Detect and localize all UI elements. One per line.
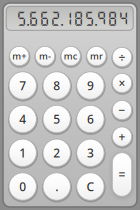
staticText: . [55,178,58,194]
staticText: = [118,166,125,182]
button[interactable]: 5 [41,104,72,134]
staticText: 8 [53,77,60,93]
button[interactable]: mc [59,45,82,67]
button[interactable]: 9 [75,70,106,101]
staticText: × [118,75,125,91]
button[interactable]: 0 [7,171,38,202]
button[interactable]: − [111,99,133,121]
button[interactable]: × [111,72,133,94]
button[interactable]: m- [34,45,56,67]
staticText: 6 [87,111,94,127]
staticText: 4 [19,111,26,127]
staticText: mc [64,50,78,62]
button[interactable]: 1 [7,138,38,168]
staticText: − [118,102,125,118]
staticText: 0 [19,178,26,194]
staticText: + [118,129,125,144]
staticText: 1 [19,145,26,161]
staticText: m+ [12,50,26,62]
staticText: 2 [53,145,60,161]
staticText: 9 [87,77,94,93]
button[interactable]: mr [85,45,108,67]
button[interactable]: 4 [7,104,38,134]
button[interactable]: m+ [8,45,30,67]
staticText: 3 [87,145,94,161]
staticText: ÷ [118,49,125,65]
staticText: C [86,178,94,194]
button[interactable]: ÷ [111,46,133,68]
staticText: 5.662.185.984 [16,10,129,27]
button[interactable]: . [41,171,72,202]
button[interactable]: = [112,153,132,196]
button[interactable]: 7 [7,70,38,101]
button[interactable]: 6 [75,104,106,134]
staticText: m- [39,50,51,62]
staticText: 5 [53,111,60,127]
staticText: 7 [19,77,26,93]
staticText: mr [90,50,103,62]
button[interactable]: 3 [75,138,106,168]
button[interactable]: C [75,171,106,202]
button[interactable]: 2 [41,138,72,168]
button[interactable]: + [111,125,133,148]
button[interactable]: 8 [41,70,72,101]
